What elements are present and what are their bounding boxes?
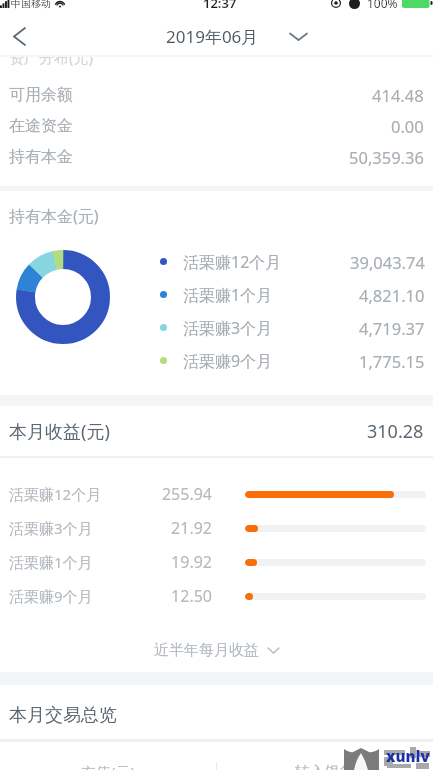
staticText: 活栗赚1个月 <box>183 284 273 306</box>
button[interactable]: 本月收益(元) <box>0 406 433 456</box>
staticText: 可用余额 <box>9 85 73 105</box>
button[interactable]: 在途资金 <box>0 110 433 141</box>
button[interactable]: 2019年06月 <box>166 25 308 48</box>
button[interactable]: 转入银行 <box>217 757 433 770</box>
staticText: 转入银行 <box>295 763 355 770</box>
staticText: 近半年每月收益 <box>154 641 259 660</box>
staticText: 在途资金 <box>9 116 73 136</box>
staticText: 12:37 <box>203 0 237 12</box>
staticText: 活栗赚9个月 <box>183 350 273 372</box>
button[interactable]: 活栗赚12个月 <box>0 477 433 511</box>
staticText: 0.00 <box>391 115 424 137</box>
staticText: 12.50 <box>152 585 212 607</box>
staticText: 持有本金(元) <box>9 205 99 227</box>
button[interactable]: 活栗赚3个月 <box>0 511 433 545</box>
button[interactable]: 资产分布(元) <box>0 57 433 66</box>
button[interactable]: 可用余额 <box>0 79 433 110</box>
button[interactable]: 持有本金 <box>0 141 433 172</box>
button[interactable]: 近半年每月收益 <box>0 628 433 672</box>
button[interactable]: 活栗赚3个月 <box>0 311 433 344</box>
staticText: 资产分布(元) <box>9 57 94 66</box>
staticText: 1,775.15 <box>359 350 425 372</box>
staticText: 活栗赚3个月 <box>9 518 93 538</box>
button[interactable]: 活栗赚12个月 <box>0 245 433 278</box>
staticText: 持有本金 <box>9 147 73 167</box>
button[interactable]: 活栗赚1个月 <box>0 545 433 579</box>
button[interactable]: 活栗赚1个月 <box>0 278 433 311</box>
staticText: 310.28 <box>367 419 424 444</box>
staticText: 4,821.10 <box>359 284 425 306</box>
staticText: xunlv <box>386 746 430 766</box>
staticText: 充值(元) <box>81 762 136 770</box>
button[interactable]: 活栗赚9个月 <box>0 579 433 613</box>
staticText: 活栗赚1个月 <box>9 552 93 572</box>
button[interactable]: 充值(元) <box>0 757 216 770</box>
staticText: 414.48 <box>372 84 424 106</box>
staticText: 活栗赚3个月 <box>183 317 273 339</box>
staticText: 255.94 <box>152 483 212 505</box>
staticText: 本月交易总览 <box>9 704 117 727</box>
staticText: 中国移动 <box>11 0 51 10</box>
staticText: 活栗赚12个月 <box>9 484 102 504</box>
staticText: 100% <box>367 0 398 11</box>
staticText: 2019年06月 <box>166 25 259 48</box>
staticText: 活栗赚12个月 <box>183 251 282 273</box>
button[interactable]: 活栗赚9个月 <box>0 344 433 377</box>
button[interactable]: Back <box>2 20 36 53</box>
staticText: 活栗赚9个月 <box>9 586 93 606</box>
staticText: 21.92 <box>152 517 212 539</box>
staticText: 39,043.74 <box>350 251 425 273</box>
staticText: 50,359.36 <box>349 146 424 168</box>
staticText: 19.92 <box>152 551 212 573</box>
staticText: 4,719.37 <box>359 317 425 339</box>
staticText: 本月收益(元) <box>9 419 110 444</box>
